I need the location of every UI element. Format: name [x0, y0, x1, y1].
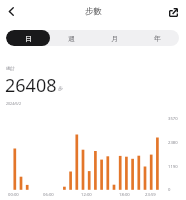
- staticText: 日: [25, 34, 32, 43]
- staticText: 週: [68, 34, 75, 43]
- staticText: 18:00: [119, 192, 130, 198]
- button[interactable]: 年: [136, 30, 179, 46]
- button[interactable]: 週: [50, 30, 93, 46]
- staticText: 年: [154, 34, 161, 43]
- staticText: 3570: [168, 116, 178, 122]
- staticText: 26408: [5, 73, 57, 98]
- staticText: 2024/6/2: [6, 101, 22, 106]
- staticText: 00:00: [8, 192, 19, 198]
- button[interactable]: Share: [165, 4, 181, 20]
- staticText: 0: [168, 187, 171, 193]
- button[interactable]: 月: [93, 30, 136, 46]
- staticText: 總計: [6, 66, 15, 72]
- staticText: 23:59: [145, 192, 156, 198]
- button[interactable]: 日: [6, 30, 50, 46]
- staticText: 步數: [85, 6, 102, 17]
- staticText: 12:00: [81, 192, 92, 198]
- staticText: 步: [58, 85, 63, 91]
- button[interactable]: Back: [2, 2, 20, 20]
- staticText: 1190: [168, 164, 178, 170]
- staticText: 月: [111, 34, 118, 43]
- staticText: 2380: [168, 140, 178, 146]
- staticText: 06:00: [43, 192, 54, 198]
